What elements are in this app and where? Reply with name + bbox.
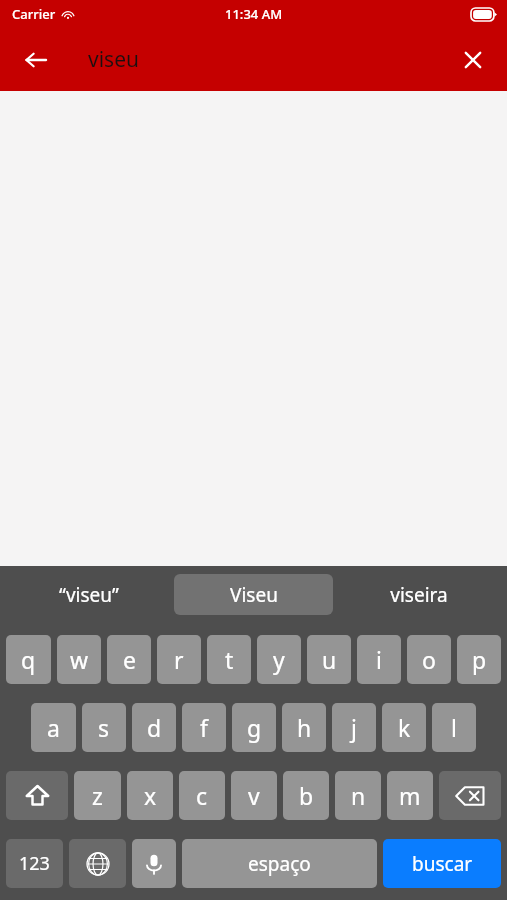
- button[interactable]: buscar: [383, 839, 501, 888]
- button[interactable]: q: [6, 635, 51, 684]
- button[interactable]: j: [332, 703, 376, 752]
- staticText: d: [147, 712, 162, 743]
- staticText: Carrier: [12, 5, 56, 23]
- button[interactable]: g: [232, 703, 276, 752]
- button[interactable]: k: [382, 703, 426, 752]
- button[interactable]: Viseu: [174, 574, 333, 615]
- staticText: “viseu”: [59, 582, 119, 608]
- staticText: viseu: [88, 45, 139, 74]
- button[interactable]: Shift: [6, 771, 68, 820]
- staticText: j: [351, 712, 357, 743]
- button[interactable]: z: [74, 771, 121, 820]
- staticText: u: [322, 644, 337, 675]
- staticText: p: [472, 644, 487, 675]
- button[interactable]: 123: [6, 839, 63, 888]
- staticText: e: [123, 644, 136, 675]
- button[interactable]: c: [179, 771, 225, 820]
- staticText: 123: [19, 851, 50, 876]
- button[interactable]: Dictation: [132, 839, 176, 888]
- button[interactable]: a: [31, 703, 76, 752]
- button[interactable]: v: [231, 771, 277, 820]
- staticText: g: [247, 712, 262, 743]
- button[interactable]: Clear: [449, 36, 497, 84]
- staticText: a: [47, 712, 60, 743]
- button[interactable]: l: [432, 703, 476, 752]
- staticText: c: [196, 780, 208, 811]
- staticText: b: [299, 780, 314, 811]
- staticText: x: [144, 780, 157, 811]
- button[interactable]: espaço: [182, 839, 377, 888]
- staticText: w: [70, 644, 89, 675]
- button[interactable]: viseira: [339, 574, 498, 615]
- button[interactable]: e: [107, 635, 151, 684]
- staticText: o: [422, 644, 436, 675]
- button[interactable]: n: [335, 771, 381, 820]
- staticText: r: [174, 644, 184, 675]
- staticText: h: [297, 712, 312, 743]
- staticText: y: [273, 644, 285, 675]
- button[interactable]: d: [132, 703, 176, 752]
- button[interactable]: Backspace: [439, 771, 501, 820]
- staticText: viseira: [390, 582, 448, 608]
- button[interactable]: m: [387, 771, 433, 820]
- staticText: buscar: [412, 851, 473, 877]
- button[interactable]: f: [182, 703, 226, 752]
- button[interactable]: u: [307, 635, 351, 684]
- staticText: Viseu: [230, 582, 278, 608]
- button[interactable]: t: [207, 635, 251, 684]
- staticText: espaço: [248, 851, 311, 877]
- staticText: v: [248, 780, 260, 811]
- button[interactable]: b: [283, 771, 329, 820]
- button[interactable]: y: [257, 635, 301, 684]
- button[interactable]: s: [82, 703, 126, 752]
- button[interactable]: p: [457, 635, 501, 684]
- button[interactable]: Change keyboard language: [69, 839, 126, 888]
- staticText: m: [399, 780, 421, 811]
- staticText: i: [376, 644, 382, 675]
- staticText: t: [225, 644, 234, 675]
- button[interactable]: o: [407, 635, 451, 684]
- button[interactable]: Back: [12, 36, 60, 84]
- button[interactable]: i: [357, 635, 401, 684]
- button[interactable]: x: [127, 771, 173, 820]
- staticText: l: [451, 712, 457, 743]
- button[interactable]: w: [57, 635, 101, 684]
- staticText: s: [98, 712, 110, 743]
- staticText: n: [351, 780, 366, 811]
- staticText: k: [398, 712, 411, 743]
- staticText: q: [21, 644, 36, 675]
- staticText: f: [200, 712, 208, 743]
- button[interactable]: “viseu”: [9, 574, 168, 615]
- staticText: 11:34 AM: [225, 5, 283, 23]
- button[interactable]: h: [282, 703, 326, 752]
- button[interactable]: r: [157, 635, 201, 684]
- staticText: z: [92, 780, 103, 811]
